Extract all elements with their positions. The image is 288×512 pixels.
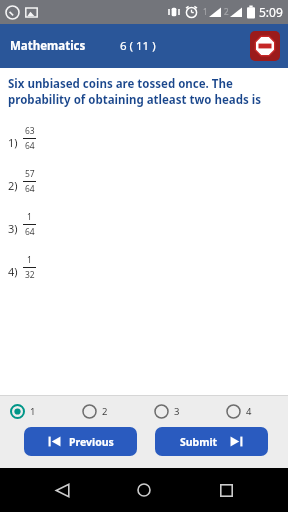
- staticText: 64: [25, 183, 35, 195]
- staticText: 2: [102, 405, 108, 418]
- staticText: 1: [203, 6, 208, 17]
- staticText: 1): [8, 135, 18, 150]
- staticText: 3: [174, 405, 180, 418]
- staticText: 63: [25, 125, 35, 137]
- button[interactable]: 1: [0, 404, 72, 419]
- staticText: 1: [30, 405, 36, 418]
- button[interactable]: Back: [42, 470, 82, 510]
- staticText: 64: [25, 140, 35, 152]
- staticText: 3): [8, 221, 18, 236]
- staticText: 57: [25, 168, 35, 180]
- staticText: 2): [8, 178, 18, 193]
- button[interactable]: Stop test: [250, 31, 280, 61]
- button[interactable]: Recent apps: [206, 470, 246, 510]
- button[interactable]: Submit: [155, 427, 268, 456]
- button[interactable]: Previous: [24, 427, 137, 456]
- staticText: 6 ( 11 ): [120, 38, 156, 54]
- staticText: 4: [246, 405, 252, 418]
- button[interactable]: 2: [72, 404, 144, 419]
- button[interactable]: 3: [144, 404, 216, 419]
- staticText: 4): [8, 264, 18, 279]
- staticText: 1: [27, 211, 32, 223]
- staticText: 32: [25, 269, 35, 281]
- staticText: Mathematics: [10, 38, 86, 54]
- staticText: 2: [224, 6, 229, 17]
- button[interactable]: 4: [216, 404, 288, 419]
- staticText: Six unbiased coins are tossed once. The …: [8, 76, 261, 107]
- staticText: Submit: [180, 435, 218, 449]
- staticText: 5:09: [259, 4, 283, 20]
- staticText: Previous: [69, 435, 114, 449]
- staticText: 64: [25, 226, 35, 238]
- staticText: 1: [27, 254, 32, 266]
- button[interactable]: Home: [124, 470, 164, 510]
